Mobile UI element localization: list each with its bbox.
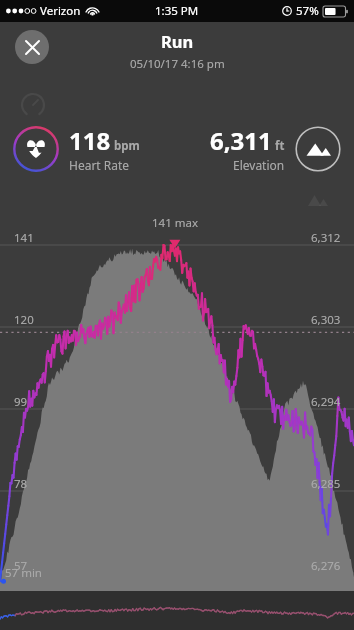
staticText: 57 min xyxy=(5,565,42,581)
staticText: 6,312 xyxy=(311,230,341,246)
staticText: 6,276 xyxy=(311,558,341,574)
staticText: Run xyxy=(161,30,194,52)
button[interactable]: 6,311 xyxy=(210,124,341,173)
staticText: 57 xyxy=(14,558,28,574)
staticText: 141 max xyxy=(152,215,199,231)
staticText: 6,294 xyxy=(311,394,341,410)
staticText: 120 xyxy=(14,312,34,328)
staticText: 141 xyxy=(14,230,34,246)
staticText: 05/10/17 4:16 pm xyxy=(130,56,225,72)
staticText: Elevation xyxy=(233,157,285,173)
staticText: 6,303 xyxy=(311,312,341,328)
staticText: bpm xyxy=(114,138,140,154)
staticText: 1:35 PM xyxy=(155,3,199,19)
staticText: 99 xyxy=(14,394,28,410)
staticText: 57% xyxy=(296,3,319,19)
staticText: 6,285 xyxy=(311,476,341,492)
staticText: 118 xyxy=(69,124,111,157)
staticText: 78 xyxy=(14,476,28,492)
staticText: Verizon xyxy=(40,3,81,19)
staticText: ft xyxy=(275,138,285,154)
staticText: 6,311 xyxy=(210,124,272,157)
button[interactable]: 118 xyxy=(13,124,210,173)
button[interactable]: Close xyxy=(15,30,49,64)
staticText: Heart Rate xyxy=(69,157,130,173)
